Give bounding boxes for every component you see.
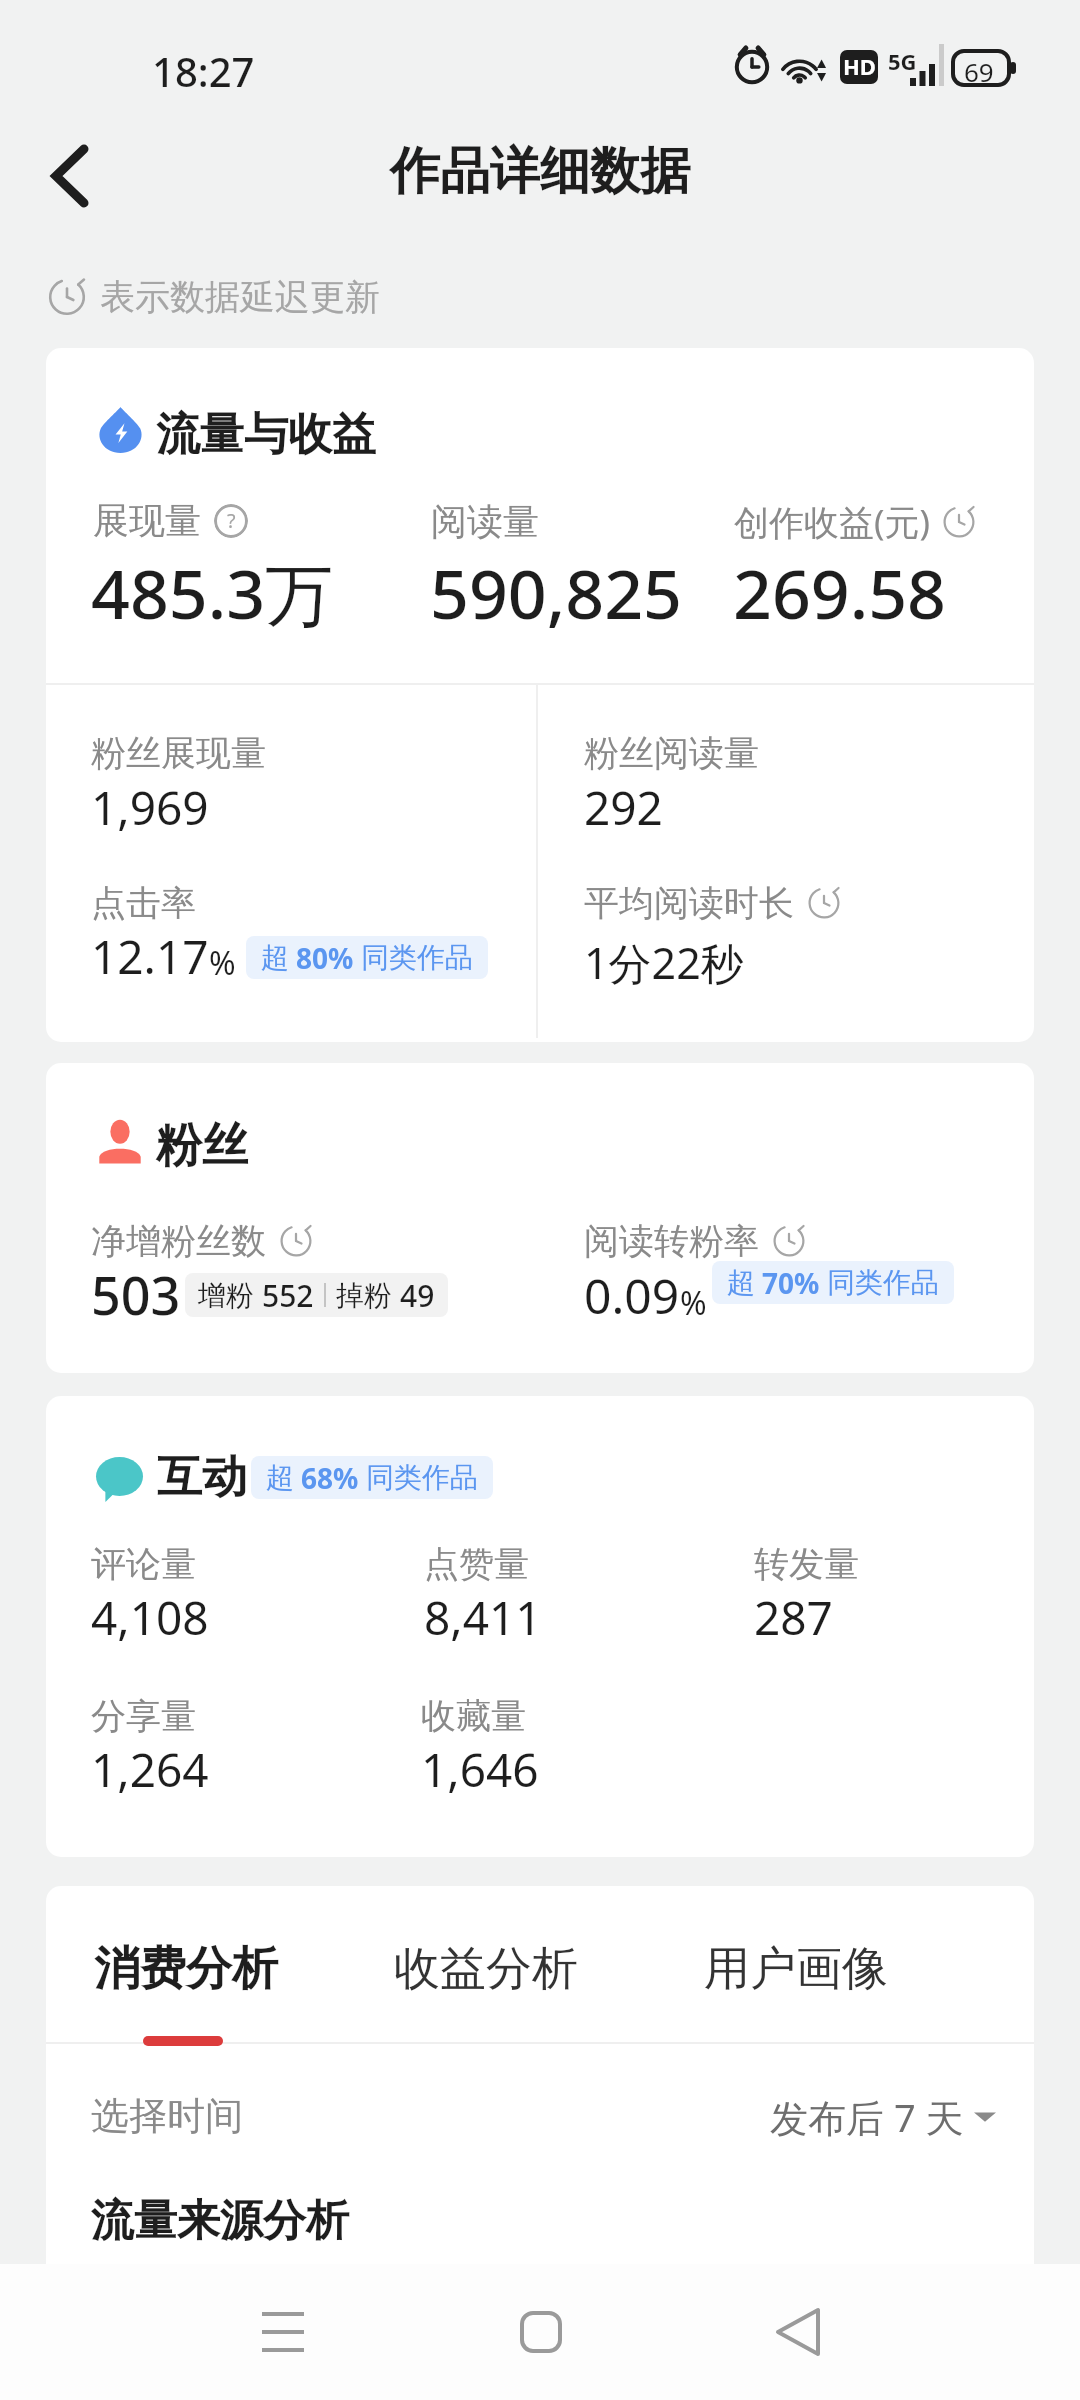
staticText: 消费分析 [94, 1940, 278, 1998]
staticText: 503 [91, 1259, 181, 1330]
button[interactable]: Recent apps [228, 2289, 338, 2375]
staticText: 互动 [157, 1449, 247, 1506]
button[interactable]: 创作收益(元) 269.58 [721, 486, 1021, 616]
staticText: 用户画像 [704, 1940, 888, 1998]
staticText: 68% [301, 1459, 359, 1497]
staticText: 69 [964, 54, 994, 89]
staticText: 点击率 [91, 881, 196, 925]
staticText: 49 [400, 1275, 435, 1316]
staticText: 超 [261, 940, 289, 975]
staticText: 阅读量 [431, 499, 539, 544]
button[interactable]: 用户画像 [704, 1940, 888, 1998]
staticText: 掉粉 [336, 1278, 392, 1313]
staticText: 分享量 [91, 1694, 196, 1738]
staticText: 292 [584, 776, 663, 839]
staticText: 269.58 [733, 546, 946, 639]
staticText: 粉丝 [156, 1117, 248, 1175]
staticText: 18:27 [152, 44, 255, 98]
staticText: 590,825 [430, 546, 682, 639]
staticText: 转发量 [754, 1542, 859, 1586]
staticText: 评论量 [91, 1542, 196, 1586]
staticText: 收藏量 [421, 1694, 526, 1738]
staticText: 流量来源分析 [91, 2194, 349, 2248]
staticText: 粉丝阅读量 [584, 731, 759, 775]
staticText: 5G [888, 46, 917, 76]
button[interactable]: 超 [712, 1261, 954, 1304]
staticText: 1,646 [421, 1738, 539, 1801]
staticText: 展现量 [93, 498, 201, 543]
staticText: % [209, 941, 236, 985]
button[interactable]: 收益分析 [394, 1940, 578, 1998]
staticText: 平均阅读时长 [584, 881, 794, 925]
staticText: 12.17 [91, 925, 209, 988]
staticText: 1分22秒 [584, 933, 744, 992]
staticText: ? [227, 507, 236, 534]
staticText: 点赞量 [424, 1542, 529, 1586]
staticText: 同类作品 [827, 1265, 939, 1300]
staticText: 收益分析 [394, 1940, 578, 1998]
staticText: 选择时间 [91, 2092, 243, 2140]
staticText: 作品详细数据 [390, 140, 690, 203]
staticText: 552 [262, 1275, 314, 1316]
staticText: 80% [296, 939, 354, 977]
staticText: 流量与收益 [156, 407, 376, 462]
staticText: 粉丝展现量 [91, 731, 266, 775]
button[interactable]: 消费分析 [94, 1940, 278, 1998]
button[interactable]: 超 [251, 1456, 493, 1499]
staticText: 287 [754, 1586, 833, 1649]
staticText: 8,411 [424, 1586, 542, 1649]
button[interactable]: Home [486, 2289, 596, 2375]
button[interactable]: 超 [246, 936, 488, 979]
button[interactable]: Back [14, 120, 110, 216]
button[interactable]: 展现量 485.3万 [76, 486, 386, 616]
staticText: 超 [266, 1460, 294, 1495]
button[interactable]: Back [743, 2289, 853, 2375]
staticText: 485.3万 [91, 546, 334, 639]
staticText: 0.09 [584, 1263, 680, 1328]
button[interactable]: What is this metric? [214, 504, 248, 538]
staticText: 超 [727, 1265, 755, 1300]
staticText: 增粉 [198, 1278, 254, 1313]
staticText: 表示数据延迟更新 [100, 275, 380, 319]
staticText: 创作收益(元) [734, 498, 931, 546]
button[interactable]: 发布后 7 天 [770, 2091, 996, 2143]
button[interactable]: 阅读量 590,825 [416, 486, 716, 616]
staticText: % [680, 1281, 707, 1325]
staticText: 1,264 [91, 1738, 209, 1801]
staticText: 净增粉丝数 [91, 1219, 266, 1263]
staticText: 同类作品 [361, 940, 473, 975]
staticText: 阅读转粉率 [584, 1219, 759, 1263]
staticText: 发布后 7 天 [770, 2091, 964, 2143]
staticText: 1,969 [91, 776, 209, 839]
staticText: 70% [762, 1264, 820, 1302]
staticText: 同类作品 [366, 1460, 478, 1495]
staticText: HD [843, 51, 876, 81]
staticText: 4,108 [91, 1586, 209, 1649]
